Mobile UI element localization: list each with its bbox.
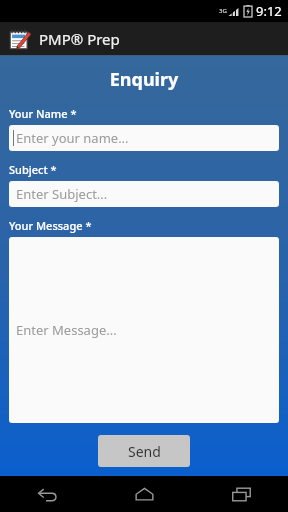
staticText: PMP® Prep [39, 29, 120, 49]
button[interactable]: Back [24, 478, 70, 510]
staticText: Your Name * [9, 106, 77, 121]
staticText: Enter your name... [16, 129, 129, 147]
staticText: 3G [219, 7, 227, 15]
staticText: Enquiry [9, 67, 279, 92]
button[interactable]: Enter Message... [9, 237, 279, 423]
staticText: Your Message * [9, 218, 92, 233]
button[interactable]: Send [98, 435, 190, 467]
staticText: 9:12 [256, 2, 282, 20]
button[interactable]: Enter Subject... [9, 181, 279, 207]
button[interactable]: Recent apps [218, 478, 264, 510]
staticText: Enter Subject... [16, 185, 108, 203]
staticText: Send [128, 442, 161, 461]
staticText: Enter Message... [16, 321, 117, 339]
button[interactable]: Enter your name... [9, 125, 279, 151]
staticText: Subject * [9, 162, 57, 177]
button[interactable]: Home [121, 478, 167, 510]
